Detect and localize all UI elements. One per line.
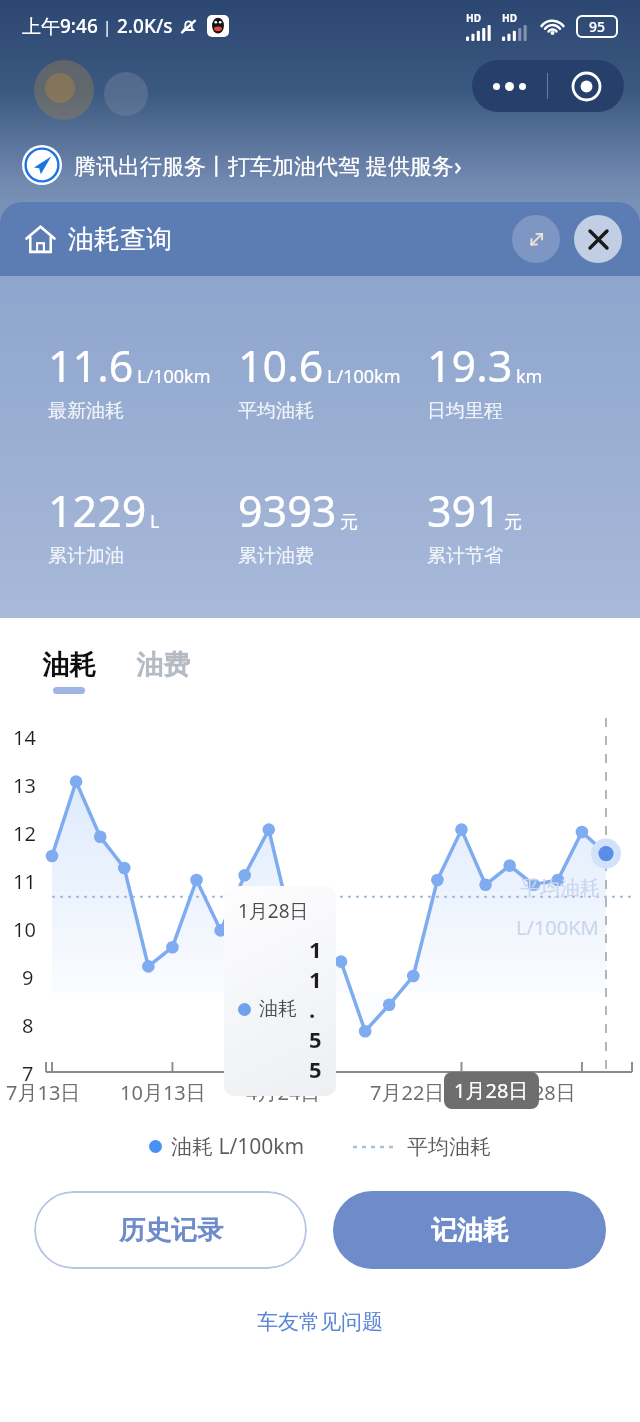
staticText: |	[98, 15, 117, 38]
staticText: 记油耗	[431, 1214, 509, 1247]
staticText: 19.3	[427, 336, 513, 395]
button[interactable]: 腾讯出行服务丨打车加油代驾 提供服务	[0, 134, 640, 196]
button[interactable]: 历史记录	[34, 1191, 307, 1269]
staticText: 14	[13, 724, 36, 751]
staticText: HD	[502, 11, 517, 25]
staticText: 油耗	[42, 648, 96, 682]
staticText: 历史记录	[119, 1214, 223, 1247]
staticText: 8	[22, 1012, 34, 1039]
staticText: 9393	[238, 481, 337, 540]
staticText: 12月28日	[490, 1079, 576, 1106]
staticText: 9	[22, 964, 34, 991]
staticText: 12	[13, 820, 36, 847]
staticText: L/100km	[327, 364, 401, 389]
staticText: 平均油耗	[520, 876, 600, 901]
staticText: 2.0K/s	[117, 13, 173, 39]
staticText: 车友常见问题	[257, 1309, 383, 1335]
staticText: 7月22日	[370, 1079, 445, 1106]
staticText: 391	[427, 481, 501, 540]
staticText: L	[150, 509, 160, 534]
staticText: 10月13日	[120, 1079, 206, 1106]
staticText: HD	[466, 11, 481, 25]
staticText: 7月13日	[6, 1079, 81, 1106]
staticText: 11.6	[48, 336, 134, 395]
staticText: 10.6	[238, 336, 324, 395]
button[interactable]: More options	[472, 60, 547, 112]
staticText: 10	[13, 916, 36, 943]
staticText: 元	[504, 511, 522, 534]
staticText: 1月28日	[238, 898, 309, 924]
staticText: 1月28日	[454, 1077, 529, 1104]
staticText: 累计节省	[427, 544, 503, 568]
staticText: 累计加油	[48, 544, 124, 568]
button[interactable]: 油耗	[38, 648, 100, 694]
staticText: 平均油耗	[238, 399, 314, 423]
button[interactable]: Close mini program	[548, 60, 624, 112]
staticText: 95	[589, 17, 606, 36]
staticText: 上午9:46	[22, 13, 98, 39]
staticText: 最新油耗	[48, 399, 124, 423]
staticText: 13	[13, 772, 36, 799]
button[interactable]: Expand	[512, 215, 560, 263]
staticText: 元	[340, 511, 358, 534]
staticText: km	[516, 364, 543, 389]
staticText: 油耗	[259, 997, 297, 1021]
staticText: 累计油费	[238, 544, 314, 568]
staticText: 11.55	[309, 934, 322, 1084]
button[interactable]: Home	[18, 217, 62, 261]
staticText: 7	[22, 1060, 34, 1087]
button[interactable]: 油费	[132, 648, 194, 694]
staticText: 4月24日	[246, 1079, 321, 1106]
staticText: 日均里程	[427, 399, 503, 423]
staticText: L/100KM	[516, 914, 599, 941]
button[interactable]: 车友常见问题	[247, 1299, 393, 1345]
button[interactable]: Close	[574, 215, 622, 263]
staticText: 腾讯出行服务丨打车加油代驾 提供服务	[74, 150, 454, 180]
staticText: ›	[454, 148, 462, 182]
staticText: 1229	[48, 481, 147, 540]
staticText: 平均油耗	[407, 1134, 491, 1160]
staticText: 11	[13, 868, 36, 895]
staticText: 油费	[136, 648, 190, 682]
button[interactable]: 记油耗	[333, 1191, 606, 1269]
staticText: 油耗查询	[68, 223, 172, 256]
staticText: 油耗 L/100km	[171, 1132, 305, 1161]
staticText: L/100km	[137, 364, 211, 389]
